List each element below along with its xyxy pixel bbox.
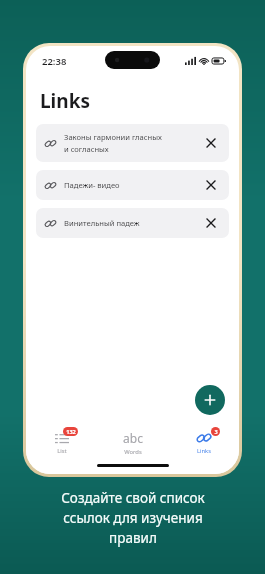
button[interactable]: Законы гармонии гласных <box>36 124 229 162</box>
staticText: и согласных <box>64 144 109 154</box>
staticText: Падежи- видео <box>64 180 120 190</box>
button[interactable]: 132 <box>26 430 97 456</box>
staticText: 132 <box>66 428 76 436</box>
button[interactable]: 3 <box>168 430 239 456</box>
button[interactable]: Добавить ссылку <box>195 385 225 415</box>
staticText: ссылок для изучения <box>63 509 203 527</box>
button[interactable]: abc <box>97 429 168 457</box>
staticText: Links <box>197 447 211 455</box>
button[interactable]: Винительный падеж <box>36 208 229 238</box>
staticText: Законы гармонии гласных <box>64 132 162 142</box>
staticText: abc <box>123 430 143 446</box>
staticText: 3 <box>214 428 218 436</box>
staticText: Words <box>124 448 142 456</box>
staticText: 22:38 <box>42 55 67 68</box>
staticText: правил <box>109 529 157 547</box>
staticText: Создайте свой список <box>61 489 205 507</box>
staticText: Винительный падеж <box>64 218 140 228</box>
button[interactable]: Падежи- видео <box>36 170 229 200</box>
button[interactable]: Удалить ссылку <box>202 214 220 232</box>
button[interactable]: Удалить ссылку <box>202 176 220 194</box>
button[interactable]: Удалить ссылку <box>202 134 220 152</box>
staticText: List <box>57 447 67 455</box>
staticText: Links <box>40 88 90 114</box>
